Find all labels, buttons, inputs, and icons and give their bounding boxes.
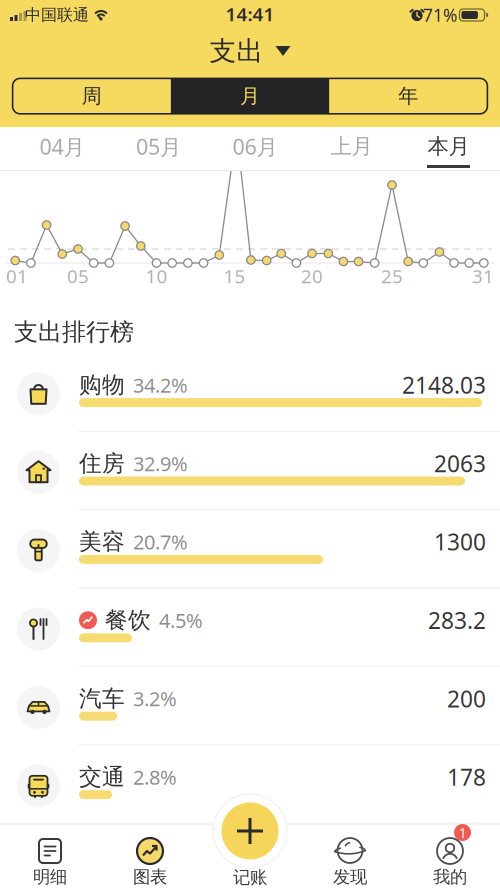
staticText: 住房 — [79, 449, 125, 477]
staticText: 1 — [458, 823, 466, 842]
staticText: 汽车 — [79, 685, 125, 712]
staticText: 我的 — [433, 866, 467, 888]
staticText: 04月 — [39, 132, 84, 161]
button[interactable]: 记账 — [221, 802, 278, 859]
staticText: 2063 — [434, 448, 486, 478]
staticText: 20 — [301, 264, 323, 288]
button[interactable]: 年 — [333, 80, 483, 113]
button[interactable]: 购物 — [0, 355, 500, 433]
staticText: 发现 — [333, 866, 367, 888]
staticText: 购物 — [79, 371, 125, 399]
button[interactable]: 05月 — [113, 126, 203, 166]
staticText: 01 — [6, 264, 28, 288]
staticText: 1300 — [434, 527, 486, 557]
staticText: 餐饮 — [105, 606, 151, 634]
staticText: 支出排行榜 — [14, 317, 134, 347]
staticText: 4.5% — [159, 607, 203, 633]
staticText: 31 — [472, 264, 494, 288]
button[interactable]: 餐饮 — [0, 590, 500, 668]
button[interactable]: 我的 — [410, 824, 490, 889]
button[interactable]: 住房 — [0, 433, 500, 511]
staticText: 05月 — [136, 132, 181, 161]
button[interactable]: 06月 — [210, 126, 300, 166]
staticText: 32.9% — [133, 450, 188, 477]
staticText: 05 — [67, 264, 89, 288]
staticText: 34.2% — [133, 372, 188, 398]
staticText: 178 — [447, 762, 486, 792]
button[interactable]: 美容 — [0, 511, 500, 590]
staticText: 2.8% — [133, 764, 177, 790]
staticText: 2148.03 — [402, 370, 486, 400]
button[interactable]: 图表 — [110, 824, 190, 889]
staticText: 20.7% — [133, 528, 188, 555]
staticText: 14:41 — [225, 2, 274, 26]
staticText: 月 — [240, 84, 260, 108]
button[interactable]: 周 — [17, 80, 167, 113]
staticText: 283.2 — [428, 605, 486, 635]
button[interactable]: 交通 — [0, 747, 500, 825]
staticText: 美容 — [79, 528, 125, 556]
staticText: 明细 — [33, 866, 67, 888]
button[interactable]: 支出 — [209, 35, 290, 67]
staticText: 3.2% — [133, 685, 177, 712]
button[interactable]: 04月 — [17, 126, 107, 166]
button[interactable]: 明细 — [10, 824, 90, 889]
staticText: 图表 — [133, 866, 167, 888]
staticText: 中国联通 — [25, 5, 89, 25]
staticText: 10 — [145, 264, 167, 288]
button[interactable]: 上月 — [306, 126, 396, 166]
button[interactable]: 本月 — [403, 125, 493, 168]
button[interactable]: 月 — [175, 80, 325, 113]
staticText: 上月 — [330, 133, 372, 160]
staticText: 本月 — [427, 133, 469, 160]
staticText: 周 — [82, 84, 102, 108]
staticText: 25 — [381, 264, 403, 288]
button[interactable]: 发现 — [310, 824, 390, 889]
button[interactable]: 汽车 — [0, 668, 500, 747]
staticText: 年 — [398, 84, 418, 108]
staticText: 支出 — [209, 35, 263, 67]
staticText: 记账 — [233, 867, 267, 888]
staticText: 交通 — [79, 763, 125, 791]
staticText: 15 — [223, 264, 245, 288]
staticText: 71% — [423, 3, 457, 26]
staticText: 06月 — [232, 132, 277, 161]
staticText: 200 — [447, 683, 486, 714]
